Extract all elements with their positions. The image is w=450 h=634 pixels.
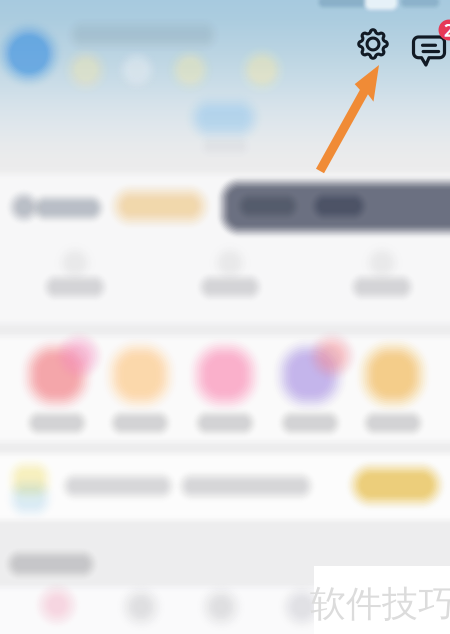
staticText: 软件技巧	[310, 582, 450, 626]
button[interactable]: Messages	[405, 19, 450, 71]
button[interactable]: Settings	[350, 21, 396, 67]
staticText: 2	[444, 18, 450, 41]
